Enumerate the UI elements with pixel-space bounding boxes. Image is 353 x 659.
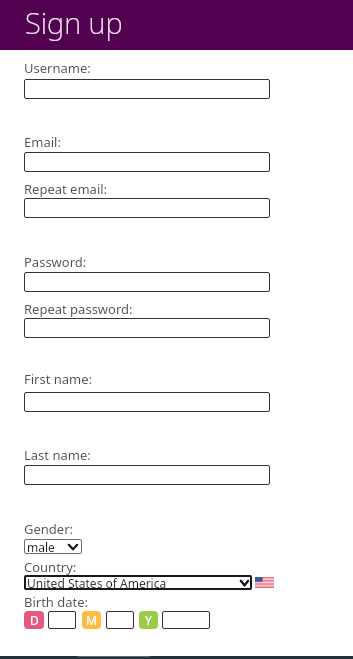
button[interactable]: Password [24,272,270,292]
button[interactable]: Repeat email [24,198,270,218]
staticText: Repeat email: [24,180,108,198]
button[interactable]: First name [24,392,270,412]
button[interactable]: Email [24,152,270,172]
button[interactable]: Country [24,575,252,590]
button[interactable]: Repeat password [24,318,270,338]
button[interactable]: Day [48,611,76,629]
staticText: United States of America [27,575,167,590]
staticText: Gender: [24,520,74,538]
staticText: Last name: [24,446,91,464]
staticText: M [86,612,97,628]
staticText: First name: [24,370,93,388]
staticText: Username: [24,59,91,77]
staticText: Repeat password: [24,300,133,318]
button[interactable]: Year [162,611,210,629]
staticText: Country: [24,558,77,576]
button[interactable]: Gender [24,539,82,554]
button[interactable]: Month [106,611,134,629]
button[interactable]: Y [139,611,158,629]
staticText: Sign up [25,3,123,42]
staticText: Email: [24,133,61,151]
button[interactable]: Username [24,79,270,99]
staticText: Y [145,612,152,628]
button[interactable]: M [82,611,101,629]
staticText: Password: [24,253,87,271]
staticText: D [30,612,39,628]
staticText: male [27,539,55,554]
staticText: Birth date: [24,593,89,611]
button[interactable]: D [24,611,44,629]
button[interactable]: Last name [24,465,270,485]
